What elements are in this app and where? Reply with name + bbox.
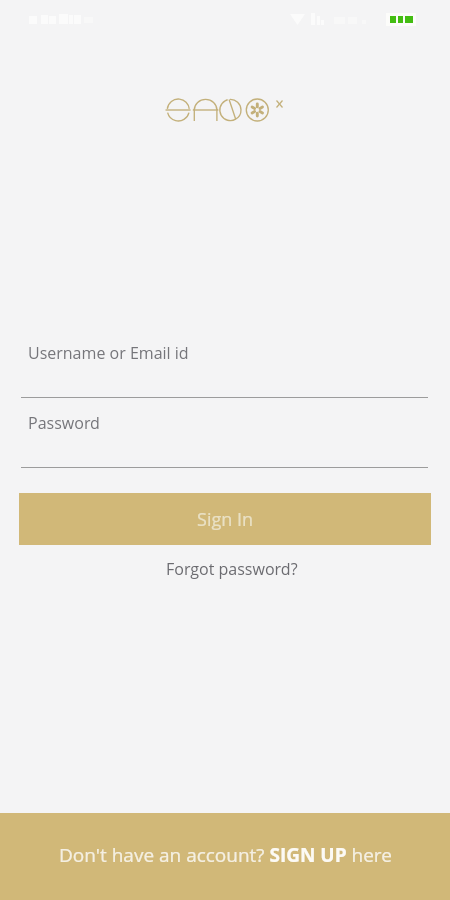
button[interactable]: Password — [21, 411, 428, 468]
button[interactable]: Sign In — [19, 493, 431, 545]
other: Sano x logo — [0, 93, 450, 127]
staticText: Username or Email id — [28, 342, 189, 364]
staticText: Don't have an account? SIGN UP here — [59, 842, 392, 868]
button[interactable]: Forgot password? — [154, 552, 310, 586]
staticText: Forgot password? — [166, 558, 298, 580]
button[interactable]: Username or Email id — [21, 341, 428, 398]
staticText: Sign In — [197, 507, 254, 532]
button[interactable]: Don't have an account? SIGN UP here — [0, 813, 450, 900]
staticText: Password — [28, 412, 100, 434]
